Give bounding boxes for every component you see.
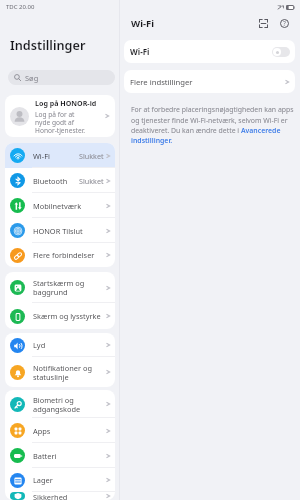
staticText: Slukket [79, 151, 104, 161]
button[interactable]: Flere forbindelser [5, 243, 115, 267]
staticText: Bluetooth [33, 176, 79, 186]
staticText: Startskærm og baggrund [33, 278, 106, 297]
button[interactable]: Help [277, 16, 291, 30]
staticText: Log på for at nyde godt af Honor-tjenest… [35, 110, 86, 135]
button[interactable]: HONOR Tilslut [5, 218, 115, 243]
staticText: Batteri [33, 451, 106, 461]
button[interactable]: Søg [8, 70, 115, 85]
staticText: Søg [25, 73, 39, 83]
staticText: Biometri og adgangskode [33, 395, 106, 414]
button[interactable]: Apps [5, 418, 115, 443]
staticText: Slukket [79, 176, 104, 186]
button[interactable]: Flere indstillinger [124, 70, 295, 93]
staticText: Indstillinger [10, 36, 86, 53]
staticText: HONOR Tilslut [33, 226, 106, 236]
button[interactable]: Wi-Fi [124, 40, 295, 63]
button[interactable]: Lager [5, 468, 115, 492]
staticText: Sikkerhed [33, 492, 106, 500]
staticText: Mobilnetværk [33, 201, 106, 211]
staticText: Notifikationer og statuslinje [33, 363, 106, 382]
button[interactable]: Log på HONOR-id [5, 95, 115, 137]
button[interactable]: Notifikationer og statuslinje [5, 357, 115, 387]
staticText: Apps [33, 426, 106, 436]
staticText: Lager [33, 475, 106, 485]
button[interactable]: Mobilnetværk [5, 193, 115, 218]
staticText: Skærm og lysstyrke [33, 311, 106, 321]
staticText: Lyd [33, 340, 106, 350]
staticText: Wi-Fi [131, 17, 155, 30]
staticText: Wi-Fi [130, 46, 150, 57]
staticText: ? [283, 19, 286, 28]
button[interactable]: Lyd [5, 333, 115, 357]
staticText: TDC 20.00 [6, 3, 35, 11]
staticText: Flere forbindelser [33, 250, 106, 260]
button[interactable]: Startskærm og baggrund [5, 272, 115, 303]
staticText: Log på HONOR-id [35, 98, 97, 108]
staticText: Wi-Fi [33, 151, 79, 161]
button[interactable]: Scan QR code [256, 16, 270, 30]
button[interactable]: Skærm og lysstyrke [5, 303, 115, 329]
staticText: For at forbedre placeringsnøjagtigheden … [131, 105, 295, 145]
button[interactable]: Batteri [5, 443, 115, 468]
button[interactable]: Bluetooth [5, 168, 115, 193]
staticText: Flere indstillinger [130, 77, 193, 87]
button[interactable]: Wi-Fi [5, 143, 115, 168]
button[interactable]: Biometri og adgangskode [5, 390, 115, 418]
button[interactable]: Sikkerhed [5, 492, 115, 500]
